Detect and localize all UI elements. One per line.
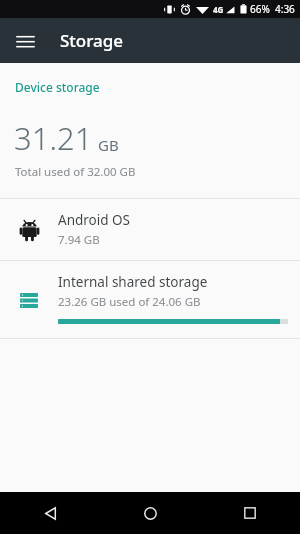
button[interactable]: Home — [100, 492, 200, 534]
staticText: 4:36 — [275, 2, 295, 16]
staticText: Internal shared storage — [58, 273, 208, 291]
staticText: 4G — [213, 4, 224, 15]
button[interactable]: Recent apps — [200, 492, 300, 534]
staticText: Android OS — [58, 211, 130, 229]
staticText: Device storage — [15, 79, 100, 95]
staticText: 23.26 GB used of 24.06 GB — [58, 294, 201, 310]
staticText: Storage — [60, 29, 124, 52]
staticText: Total used of 32.00 GB — [15, 164, 136, 180]
staticText: 7.94 GB — [58, 232, 100, 248]
button[interactable]: Back — [0, 492, 100, 534]
staticText: 31.21 — [14, 117, 93, 159]
button[interactable]: Internal shared storage — [0, 261, 300, 338]
button[interactable]: Android OS — [0, 199, 300, 260]
staticText: GB — [98, 135, 119, 155]
staticText: 66% — [250, 2, 270, 16]
button[interactable]: Open navigation menu — [10, 26, 40, 56]
